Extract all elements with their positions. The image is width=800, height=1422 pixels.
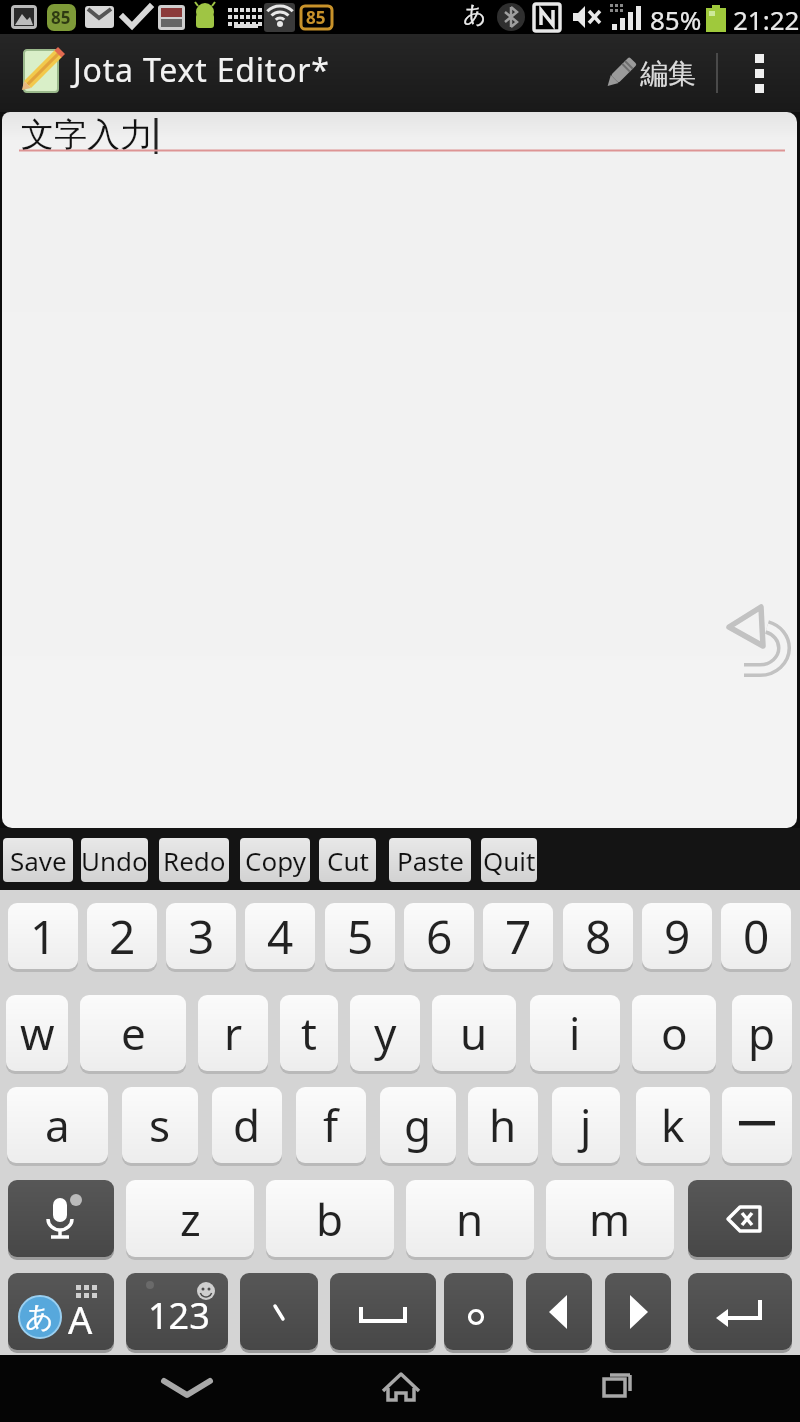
button[interactable]: Undo bbox=[81, 838, 148, 882]
button[interactable]: m bbox=[546, 1180, 674, 1257]
button[interactable] bbox=[526, 1273, 592, 1350]
staticText: u bbox=[460, 1003, 488, 1063]
staticText: 8 bbox=[585, 905, 612, 968]
button[interactable]: k bbox=[636, 1087, 710, 1163]
staticText: Cut bbox=[327, 843, 369, 878]
button[interactable]: h bbox=[468, 1087, 538, 1163]
button[interactable] bbox=[8, 1180, 114, 1257]
button[interactable]: z bbox=[126, 1180, 254, 1257]
staticText: n bbox=[456, 1189, 484, 1249]
staticText: 文字入力 bbox=[21, 114, 153, 156]
staticText: 7 bbox=[505, 905, 532, 968]
staticText: 2 bbox=[109, 905, 136, 968]
button[interactable] bbox=[736, 34, 782, 112]
button[interactable]: p bbox=[732, 995, 792, 1071]
staticText: 85 bbox=[306, 6, 326, 29]
button[interactable] bbox=[365, 1355, 437, 1422]
button[interactable]: 6 bbox=[404, 903, 474, 969]
button[interactable]: 文字入力 bbox=[2, 112, 797, 828]
staticText: s bbox=[149, 1095, 171, 1155]
staticText: Quit bbox=[483, 843, 536, 878]
button[interactable]: Redo bbox=[159, 838, 229, 882]
button[interactable]: b bbox=[266, 1180, 394, 1257]
button[interactable]: t bbox=[280, 995, 338, 1071]
button[interactable]: r bbox=[198, 995, 268, 1071]
staticText: 85% bbox=[650, 2, 702, 36]
button[interactable]: g bbox=[380, 1087, 456, 1163]
button[interactable]: f bbox=[296, 1087, 366, 1163]
staticText: 85 bbox=[51, 6, 71, 29]
staticText: i bbox=[569, 1003, 581, 1063]
button[interactable]: Paste bbox=[389, 838, 471, 882]
staticText: 6 bbox=[426, 905, 453, 968]
staticText: k bbox=[661, 1095, 685, 1155]
staticText: r bbox=[224, 1003, 243, 1063]
button[interactable]: あ bbox=[8, 1273, 114, 1350]
button[interactable]: 2 bbox=[87, 903, 157, 969]
staticText: あ bbox=[25, 1299, 54, 1334]
staticText: Copy bbox=[245, 843, 306, 878]
staticText: t bbox=[301, 1003, 317, 1063]
button[interactable]: 編集 bbox=[600, 34, 720, 112]
button[interactable]: 0 bbox=[721, 903, 791, 969]
button[interactable] bbox=[444, 1273, 513, 1350]
button[interactable] bbox=[688, 1180, 792, 1257]
staticText: ー bbox=[735, 1098, 779, 1153]
staticText: 123 bbox=[148, 1291, 210, 1340]
staticText: d bbox=[233, 1095, 261, 1155]
button[interactable]: 9 bbox=[642, 903, 712, 969]
staticText: A bbox=[68, 1293, 93, 1345]
button[interactable]: 4 bbox=[245, 903, 315, 969]
staticText: y bbox=[374, 1003, 397, 1063]
staticText: 3 bbox=[188, 905, 215, 968]
staticText: Save bbox=[10, 843, 67, 878]
staticText: g bbox=[404, 1095, 432, 1155]
button[interactable]: d bbox=[212, 1087, 282, 1163]
button[interactable]: s bbox=[122, 1087, 198, 1163]
button[interactable] bbox=[240, 1273, 318, 1350]
staticText: e bbox=[121, 1003, 146, 1063]
button[interactable]: Save bbox=[3, 838, 73, 882]
button[interactable]: 3 bbox=[166, 903, 236, 969]
staticText: w bbox=[20, 1003, 55, 1063]
staticText: b bbox=[316, 1189, 344, 1249]
staticText: あ bbox=[463, 0, 487, 29]
staticText: 編集 bbox=[640, 56, 696, 91]
button[interactable]: i bbox=[530, 995, 620, 1071]
button[interactable]: u bbox=[432, 995, 516, 1071]
button[interactable]: 7 bbox=[483, 903, 553, 969]
button[interactable]: j bbox=[552, 1087, 620, 1163]
button[interactable]: a bbox=[7, 1087, 108, 1163]
staticText: h bbox=[489, 1095, 517, 1155]
button[interactable]: y bbox=[350, 995, 420, 1071]
button[interactable]: w bbox=[6, 995, 68, 1071]
staticText: p bbox=[748, 1003, 776, 1063]
button[interactable]: Cut bbox=[319, 838, 376, 882]
button[interactable]: 5 bbox=[325, 903, 395, 969]
button[interactable]: 1 bbox=[8, 903, 78, 969]
button[interactable]: e bbox=[80, 995, 186, 1071]
staticText: 0 bbox=[743, 905, 770, 968]
button[interactable]: n bbox=[406, 1180, 534, 1257]
button[interactable]: 8 bbox=[563, 903, 633, 969]
button[interactable]: o bbox=[632, 995, 716, 1071]
button[interactable] bbox=[580, 1355, 652, 1422]
button[interactable] bbox=[688, 1273, 792, 1350]
staticText: z bbox=[180, 1189, 201, 1249]
staticText: 5 bbox=[347, 905, 374, 968]
staticText: Jota Text Editor* bbox=[73, 48, 330, 92]
staticText: m bbox=[589, 1189, 631, 1249]
button[interactable]: 123 bbox=[126, 1273, 228, 1350]
staticText: o bbox=[661, 1003, 688, 1063]
button[interactable]: Copy bbox=[240, 838, 310, 882]
button[interactable]: Quit bbox=[481, 838, 537, 882]
staticText: 21:22 bbox=[733, 2, 800, 36]
button[interactable] bbox=[330, 1273, 436, 1350]
button[interactable] bbox=[605, 1273, 671, 1350]
staticText: 9 bbox=[664, 905, 691, 968]
button[interactable] bbox=[150, 1355, 225, 1422]
staticText: 1 bbox=[30, 905, 57, 968]
staticText: j bbox=[580, 1095, 592, 1155]
staticText: a bbox=[45, 1095, 70, 1155]
button[interactable]: ー bbox=[722, 1087, 792, 1163]
